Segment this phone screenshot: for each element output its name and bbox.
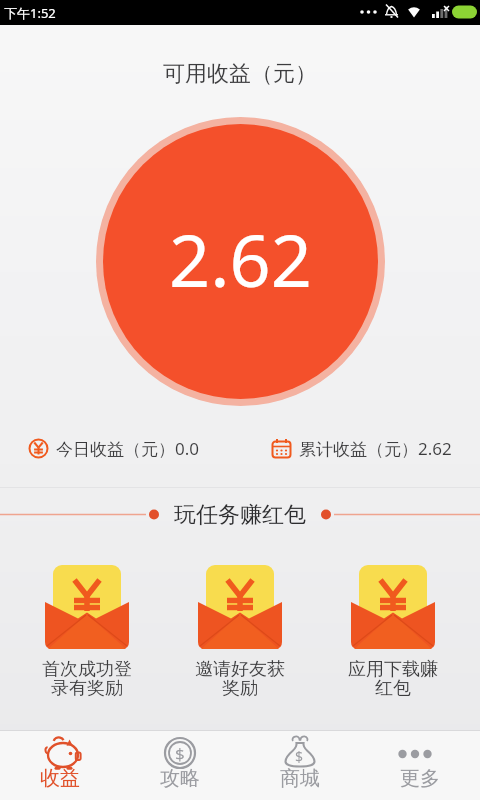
button[interactable]: 今日收益（元）0.0: [28, 437, 200, 460]
button[interactable]: 应用下载赚 红包: [345, 560, 441, 705]
button[interactable]: 邀请好友获 奖励: [192, 560, 288, 705]
staticText: 应用下载赚 红包: [345, 658, 441, 700]
staticText: 邀请好友获 奖励: [192, 658, 288, 700]
staticText: 玩任务赚红包: [174, 501, 306, 529]
staticText: 首次成功登 录有奖励: [39, 658, 135, 700]
button[interactable]: $: [240, 730, 360, 800]
staticText: 攻略: [120, 766, 240, 791]
button[interactable]: 2.62: [96, 117, 385, 406]
button[interactable]: 更多: [360, 730, 480, 800]
button[interactable]: 首次成功登 录有奖励: [39, 560, 135, 705]
staticText: 2.62: [169, 210, 312, 308]
staticText: $: [295, 747, 304, 766]
staticText: 收益: [0, 766, 120, 791]
staticText: $: [175, 742, 185, 765]
staticText: 更多: [360, 766, 480, 791]
button[interactable]: $: [120, 730, 240, 800]
staticText: 商城: [240, 766, 360, 791]
staticText: 下午1:52: [4, 4, 56, 22]
staticText: 累计收益（元）2.62: [299, 437, 452, 460]
staticText: 今日收益（元）0.0: [56, 437, 200, 460]
button[interactable]: 收益: [0, 730, 120, 800]
staticText: 可用收益（元）: [0, 60, 480, 88]
button[interactable]: 累计收益（元）2.62: [271, 437, 452, 460]
